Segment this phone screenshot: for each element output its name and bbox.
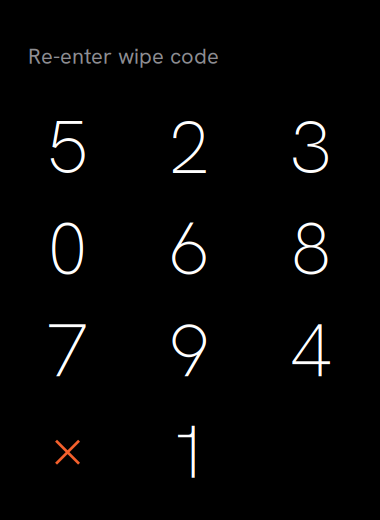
button[interactable]: 0 xyxy=(7,198,128,300)
staticText: 1 xyxy=(169,404,210,500)
staticText: 0 xyxy=(47,201,88,297)
staticText: 7 xyxy=(47,303,88,398)
button[interactable]: 9 xyxy=(128,300,250,401)
button[interactable]: 1 xyxy=(128,401,250,503)
staticText: 3 xyxy=(290,100,331,195)
button[interactable]: 2 xyxy=(128,97,250,198)
button[interactable]: 4 xyxy=(250,300,372,401)
button[interactable]: 8 xyxy=(250,198,372,300)
staticText: Re-enter wipe code xyxy=(28,42,219,70)
button[interactable]: 7 xyxy=(7,300,128,401)
button[interactable]: 3 xyxy=(250,97,372,198)
staticText: 5 xyxy=(47,100,88,195)
button[interactable]: Delete xyxy=(7,401,128,503)
staticText: 4 xyxy=(290,303,331,398)
button[interactable]: 6 xyxy=(128,198,250,300)
staticText: 9 xyxy=(169,303,210,398)
button[interactable]: 5 xyxy=(7,97,128,198)
staticText: 2 xyxy=(169,100,210,195)
staticText: 6 xyxy=(169,201,210,297)
staticText: 8 xyxy=(290,201,331,297)
